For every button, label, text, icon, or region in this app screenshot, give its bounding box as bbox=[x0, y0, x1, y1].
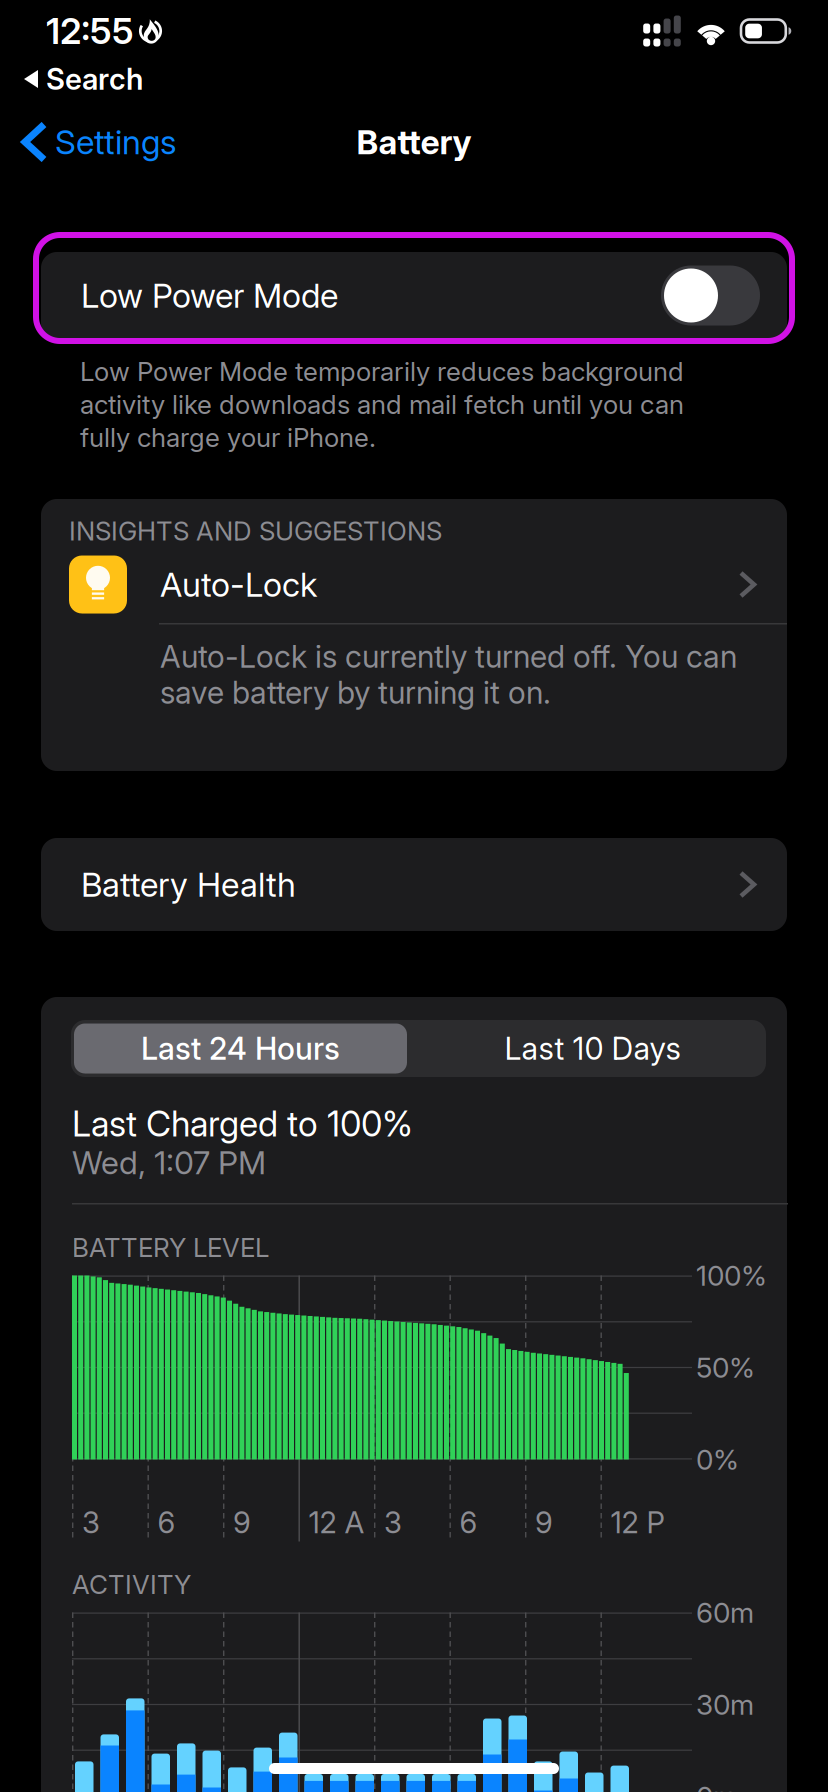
staticText: 6 bbox=[157, 1505, 175, 1540]
staticText: activity like downloads and mail fetch u… bbox=[80, 389, 684, 420]
button[interactable]: Last 10 Days bbox=[426, 1023, 759, 1073]
staticText: 60m bbox=[696, 1596, 754, 1629]
button[interactable]: Low Power Mode bbox=[41, 252, 787, 339]
staticText: Last 24 Hours bbox=[141, 1030, 340, 1067]
staticText: 9 bbox=[535, 1505, 553, 1540]
staticText: 50% bbox=[696, 1351, 755, 1384]
staticText: 6 bbox=[459, 1505, 477, 1540]
staticText: 3 bbox=[82, 1505, 100, 1540]
staticText: Battery Health bbox=[81, 864, 296, 905]
staticText: 12 A bbox=[308, 1505, 364, 1540]
button[interactable]: Search bbox=[0, 62, 400, 96]
button[interactable]: Auto-Lock bbox=[41, 546, 787, 623]
staticText: fully charge your iPhone. bbox=[80, 422, 376, 453]
button[interactable]: Last 24 Hours bbox=[74, 1023, 407, 1073]
staticText: ACTIVITY bbox=[72, 1569, 191, 1600]
staticText: Auto-Lock bbox=[160, 564, 317, 605]
staticText: Last Charged to 100% bbox=[72, 1103, 413, 1145]
staticText: 0m bbox=[696, 1780, 737, 1792]
staticText: INSIGHTS AND SUGGESTIONS bbox=[69, 515, 442, 547]
staticText: Low Power Mode bbox=[81, 275, 338, 316]
button[interactable]: Battery Health bbox=[41, 838, 787, 931]
staticText: Search bbox=[46, 61, 143, 97]
staticText: 12:55 bbox=[46, 9, 134, 53]
staticText: Settings bbox=[55, 122, 177, 162]
staticText: 12 P bbox=[610, 1505, 664, 1540]
staticText: Low Power Mode temporarily reduces backg… bbox=[80, 356, 684, 387]
staticText: BATTERY LEVEL bbox=[72, 1232, 269, 1263]
staticText: save battery by turning it on. bbox=[160, 674, 551, 711]
staticText: 3 bbox=[384, 1505, 402, 1540]
staticText: 30m bbox=[696, 1688, 754, 1721]
staticText: Wed, 1:07 PM bbox=[72, 1143, 266, 1182]
staticText: Last 10 Days bbox=[504, 1030, 680, 1067]
staticText: 100% bbox=[696, 1259, 767, 1292]
button[interactable]: Settings bbox=[0, 111, 260, 173]
staticText: Battery bbox=[356, 122, 471, 162]
staticText: Auto-Lock is currently turned off. You c… bbox=[160, 638, 737, 675]
staticText: 9 bbox=[233, 1505, 251, 1540]
staticText: 0% bbox=[696, 1443, 739, 1476]
